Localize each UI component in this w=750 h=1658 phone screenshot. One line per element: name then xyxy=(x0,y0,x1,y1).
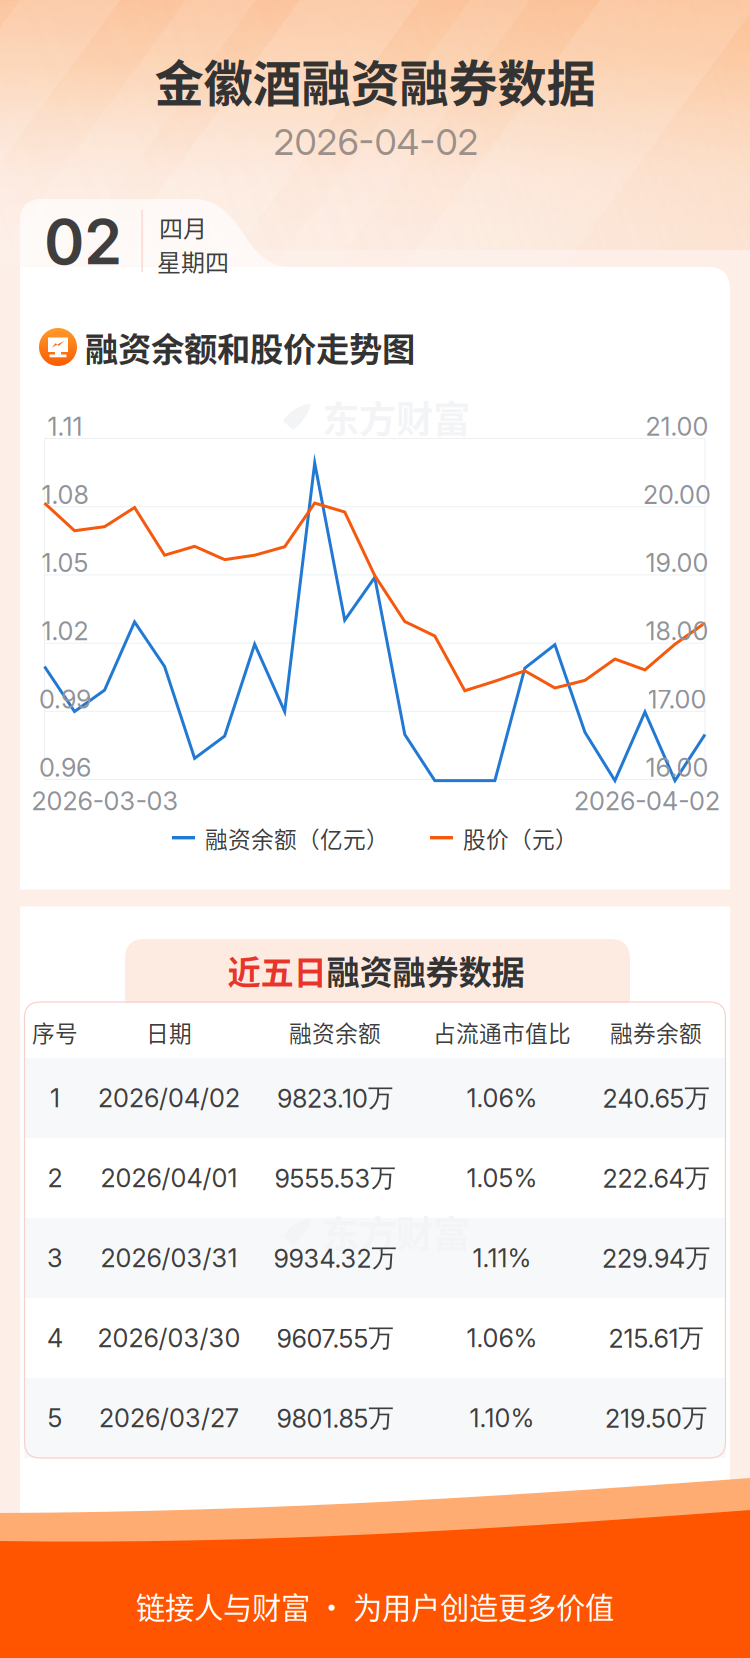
staticText: 240.65万 xyxy=(602,1082,709,1114)
staticText: 1.05% xyxy=(466,1163,537,1193)
staticText: 0.99 xyxy=(39,684,91,715)
staticText: 东方财富 xyxy=(322,1205,470,1259)
staticText: 9823.10万 xyxy=(277,1082,393,1114)
staticText: 02 xyxy=(44,205,122,279)
staticText: 日期 xyxy=(146,1016,192,1048)
staticText: 占流通市值比 xyxy=(433,1016,571,1048)
staticText: 215.61万 xyxy=(608,1322,703,1354)
staticText: 融资余额 xyxy=(289,1016,381,1048)
staticText: 9934.32万 xyxy=(273,1242,396,1274)
staticText: 18.00 xyxy=(645,616,708,646)
staticText: 2026/04/02 xyxy=(98,1083,240,1113)
staticText: 序号 xyxy=(32,1016,78,1048)
staticText: 9555.53万 xyxy=(274,1162,395,1194)
staticText: 219.50万 xyxy=(605,1402,707,1434)
staticText: 9607.55万 xyxy=(276,1322,393,1354)
staticText: 1.11% xyxy=(472,1243,531,1273)
staticText: 融资余额和股价走势图 xyxy=(85,323,415,371)
staticText: 1.11 xyxy=(47,411,82,442)
staticText: 4 xyxy=(47,1323,63,1353)
staticText: 17.00 xyxy=(647,684,706,715)
staticText: 1.06% xyxy=(466,1323,537,1353)
staticText: 融资余额（亿元） xyxy=(205,822,389,854)
staticText: 1.06% xyxy=(466,1083,537,1113)
staticText: 2026-04-02 xyxy=(273,120,478,164)
staticText: 1.10% xyxy=(469,1403,534,1433)
staticText: 5 xyxy=(47,1403,62,1433)
staticText: 近五日 xyxy=(227,946,326,994)
staticText: 2026/03/31 xyxy=(100,1243,237,1273)
staticText: 金徽酒融资融券数据 xyxy=(154,44,595,116)
staticText: 1.05 xyxy=(41,548,88,578)
staticText: 2 xyxy=(47,1163,62,1193)
staticText: 2026/03/30 xyxy=(97,1323,240,1353)
staticText: 星期四 xyxy=(157,244,229,278)
staticText: 2026-04-02 xyxy=(574,786,720,816)
staticText: 0.96 xyxy=(39,752,91,783)
staticText: 229.94万 xyxy=(602,1242,710,1274)
staticText: 9801.85万 xyxy=(276,1402,393,1434)
staticText: 融资融券数据 xyxy=(326,946,524,994)
staticText: 链接人与财富 · 为用户创造更多价值 xyxy=(136,1585,614,1627)
staticText: 四月 xyxy=(159,210,207,244)
staticText: 21.00 xyxy=(645,411,708,442)
staticText: 20.00 xyxy=(643,479,711,510)
staticText: 1.02 xyxy=(41,616,88,646)
staticText: 东方财富 xyxy=(322,390,470,444)
staticText: 2026-03-03 xyxy=(31,786,178,816)
staticText: 222.64万 xyxy=(602,1162,709,1194)
staticText: 融券余额 xyxy=(610,1016,702,1048)
staticText: 1 xyxy=(50,1083,60,1113)
staticText: 股价（元） xyxy=(463,822,578,854)
staticText: 2026/03/27 xyxy=(99,1403,239,1433)
staticText: 16.00 xyxy=(645,752,708,783)
staticText: 19.00 xyxy=(645,548,708,578)
staticText: 1.08 xyxy=(41,479,88,510)
staticText: 3 xyxy=(47,1243,63,1273)
staticText: 2026/04/01 xyxy=(100,1163,237,1193)
